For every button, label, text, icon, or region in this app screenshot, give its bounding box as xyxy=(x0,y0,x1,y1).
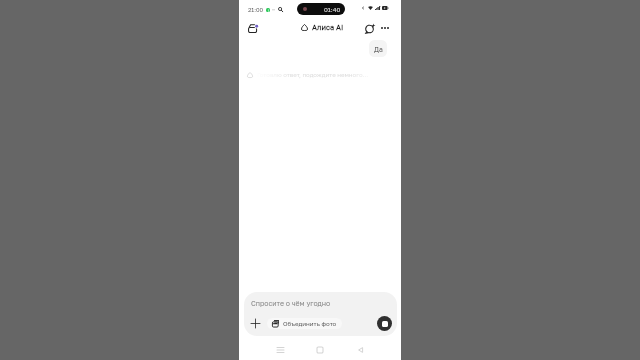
button[interactable]: Да xyxy=(369,40,387,57)
button[interactable]: New chat xyxy=(362,21,377,36)
button[interactable]: Stop xyxy=(377,316,392,331)
staticText: Готовлю ответ, подождите немного… xyxy=(257,71,369,78)
button[interactable]: Back xyxy=(352,342,368,358)
button[interactable]: Chats xyxy=(246,21,261,36)
staticText: 01:40 xyxy=(324,6,341,13)
button[interactable]: Message input xyxy=(244,292,397,336)
staticText: 21:00 xyxy=(248,6,264,13)
button[interactable]: Add attachment xyxy=(249,317,262,330)
button[interactable]: More options xyxy=(378,21,392,35)
staticText: Да xyxy=(374,45,383,53)
staticText: Объединить фото xyxy=(283,320,337,327)
button[interactable]: Объединить фото xyxy=(267,318,342,329)
button[interactable]: Home xyxy=(312,342,328,358)
staticText: Алиса AI xyxy=(312,23,344,32)
button[interactable]: Recents xyxy=(272,342,288,358)
staticText: Спросите о чём угодно xyxy=(251,299,331,307)
